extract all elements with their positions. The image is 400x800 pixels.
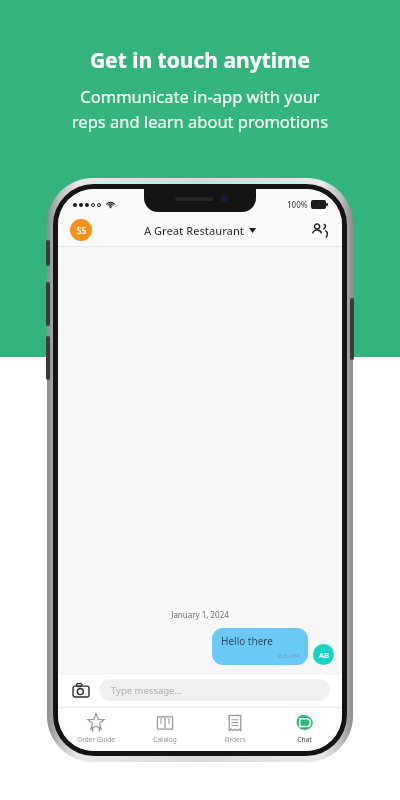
button[interactable]: Chat [272, 712, 336, 744]
staticText: Catalog [153, 735, 177, 744]
staticText: A Great Restaurant [144, 223, 245, 238]
staticText: Type message... [111, 684, 183, 697]
button[interactable]: Orders [203, 712, 267, 744]
staticText: 100% [287, 199, 308, 210]
button[interactable]: Catalog [133, 712, 197, 744]
staticText: reps and learn about promotions [0, 110, 400, 132]
staticText: SS [77, 225, 86, 236]
button[interactable]: SS [70, 219, 92, 241]
button[interactable]: Order Guide [64, 712, 128, 744]
staticText: AB [319, 650, 329, 660]
staticText: Order Guide [77, 735, 115, 744]
button[interactable]: Hello there [212, 628, 308, 665]
staticText: Chat [297, 735, 312, 744]
staticText: Get in touch anytime [0, 46, 400, 75]
button[interactable]: A Great Restaurant [144, 223, 256, 238]
staticText: Orders [224, 735, 246, 744]
button[interactable]: Camera [70, 679, 92, 701]
staticText: January 1, 2024 [58, 609, 342, 620]
button[interactable]: Participants [306, 217, 332, 243]
button[interactable]: Type message... [99, 679, 330, 701]
staticText: Communicate in-app with your [0, 85, 400, 107]
staticText: Hello there [221, 634, 273, 648]
staticText: 8:20 PM [221, 652, 299, 659]
